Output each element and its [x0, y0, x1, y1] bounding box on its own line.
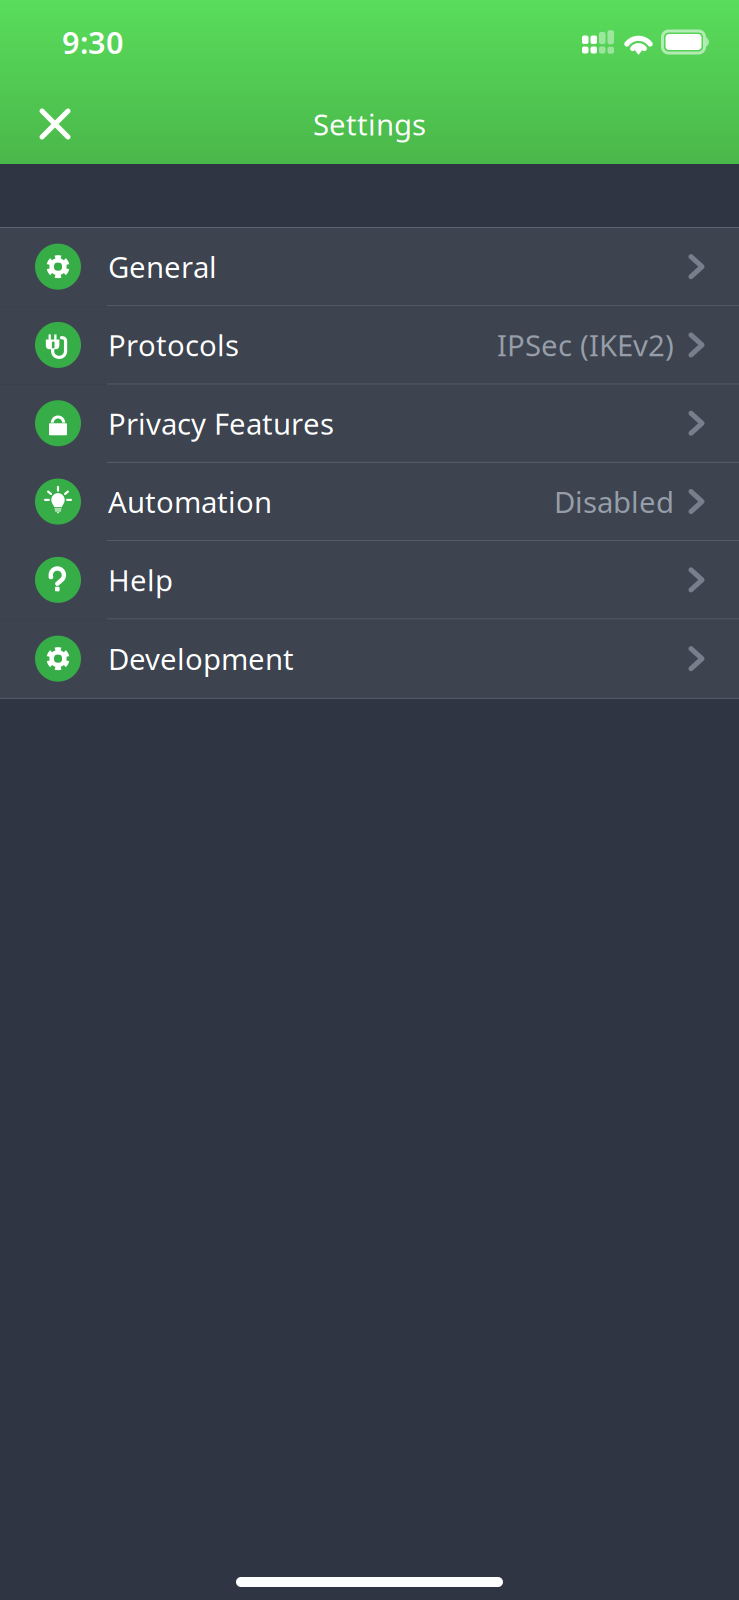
staticText: Privacy Features: [108, 404, 334, 443]
staticText: Protocols: [108, 325, 239, 364]
staticText: Automation: [108, 482, 272, 521]
button[interactable]: Development: [0, 619, 739, 698]
staticText: IPSec (IKEv2): [497, 325, 674, 364]
staticText: General: [108, 247, 217, 286]
staticText: Disabled: [554, 482, 674, 521]
button[interactable]: Automation: [0, 463, 739, 541]
staticText: Help: [108, 560, 173, 599]
staticText: 9:30: [62, 22, 124, 62]
button[interactable]: Close: [0, 86, 93, 162]
button[interactable]: Privacy Features: [0, 385, 739, 463]
button[interactable]: Help: [0, 541, 739, 619]
button[interactable]: Protocols: [0, 306, 739, 385]
staticText: Development: [108, 639, 294, 678]
staticText: Settings: [313, 104, 426, 143]
button[interactable]: General: [0, 228, 739, 306]
